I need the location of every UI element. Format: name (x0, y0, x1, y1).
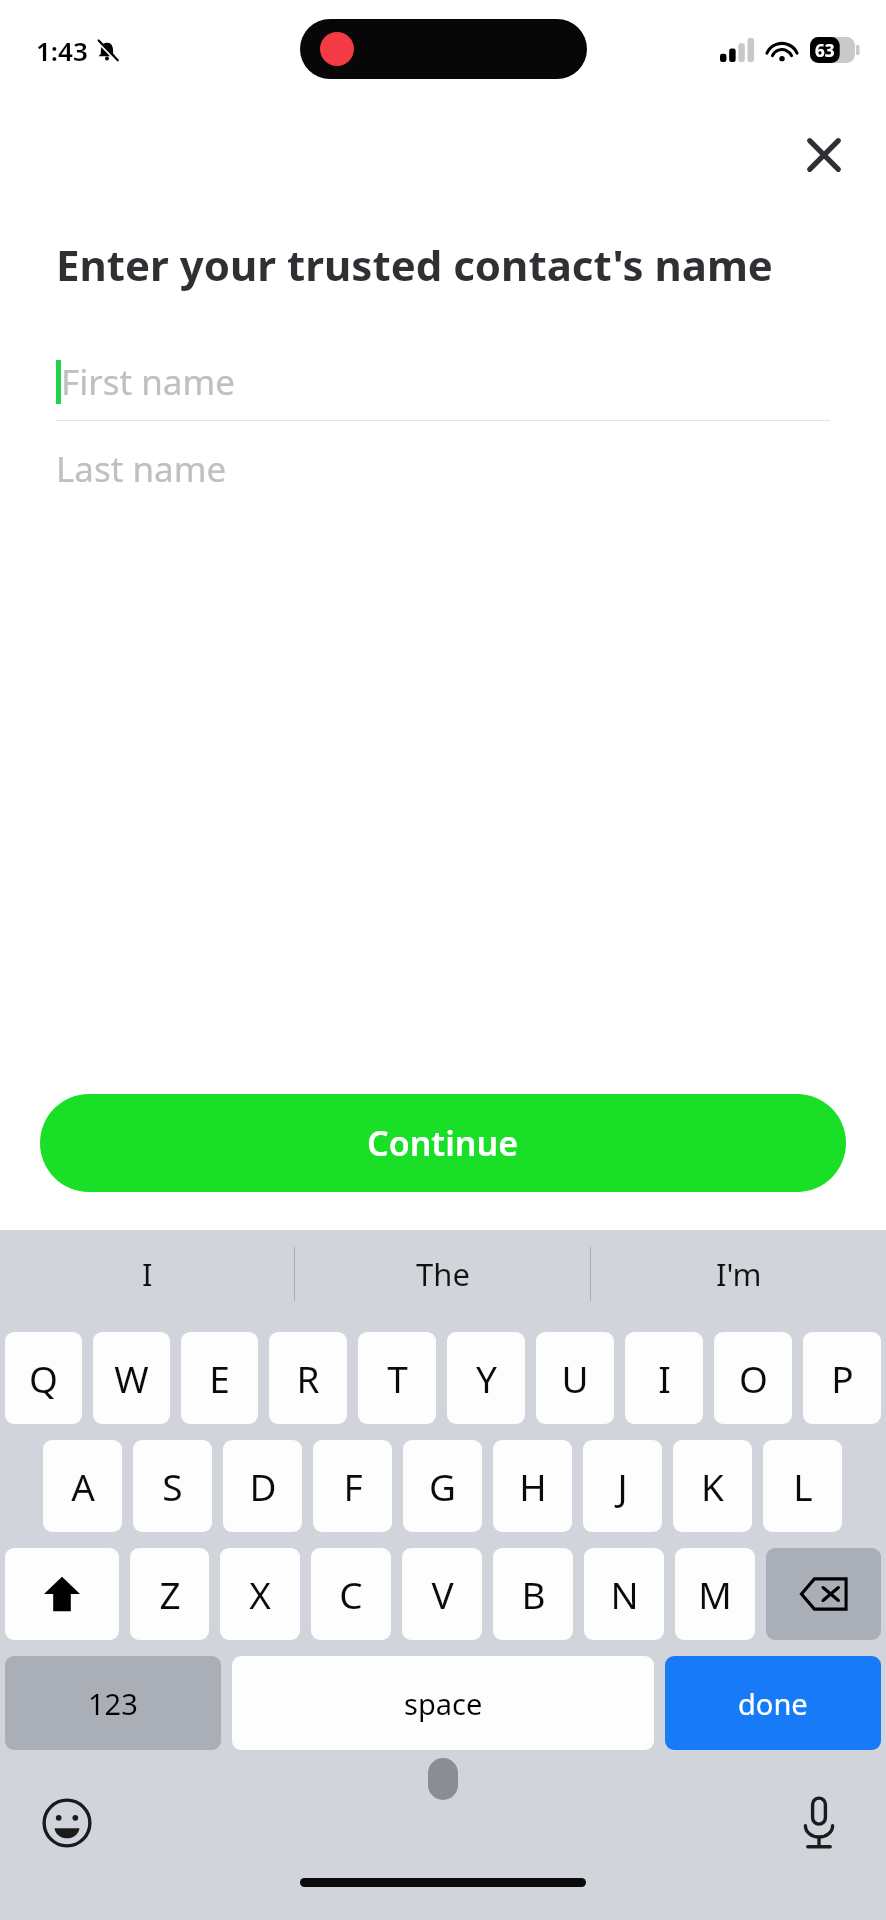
staticText: G (429, 1461, 456, 1511)
button[interactable]: space (232, 1656, 654, 1750)
button[interactable]: K (673, 1440, 752, 1532)
staticText: O (739, 1353, 768, 1403)
button[interactable]: Close (794, 125, 854, 185)
staticText: Z (159, 1569, 181, 1619)
button[interactable]: N (584, 1548, 664, 1640)
button[interactable]: L (763, 1440, 842, 1532)
staticText: H (519, 1461, 547, 1511)
staticText: D (249, 1461, 277, 1511)
staticText: The (416, 1253, 470, 1295)
button[interactable]: O (714, 1332, 792, 1424)
staticText: F (343, 1461, 363, 1511)
button[interactable]: The (295, 1230, 590, 1318)
staticText: U (561, 1353, 589, 1403)
button[interactable]: I'm (591, 1230, 886, 1318)
button[interactable]: 123 (5, 1656, 221, 1750)
staticText: A (71, 1461, 95, 1511)
staticText: 1:43 (36, 33, 88, 68)
button[interactable]: Y (447, 1332, 525, 1424)
staticText: Last name (56, 445, 227, 493)
staticText: Enter your trusted contact's name (56, 236, 773, 293)
staticText: 63 (815, 39, 835, 62)
button[interactable]: Continue (40, 1094, 846, 1192)
staticText: I'm (716, 1253, 762, 1295)
staticText: B (521, 1569, 546, 1619)
button[interactable]: Z (130, 1548, 209, 1640)
button[interactable]: C (311, 1548, 391, 1640)
button[interactable]: J (583, 1440, 662, 1532)
staticText: X (249, 1569, 271, 1619)
staticText: S (162, 1461, 183, 1511)
staticText: Continue (367, 1120, 519, 1166)
button[interactable]: G (403, 1440, 482, 1532)
button[interactable]: B (493, 1548, 573, 1640)
button[interactable]: Last name (56, 421, 830, 517)
button[interactable]: Shift (5, 1548, 119, 1640)
button[interactable]: First name (56, 343, 830, 420)
button[interactable]: E (181, 1332, 258, 1424)
button[interactable]: X (220, 1548, 300, 1640)
staticText: 123 (88, 1684, 138, 1723)
button[interactable]: done (665, 1656, 881, 1750)
staticText: C (339, 1569, 363, 1619)
staticText: P (831, 1353, 854, 1403)
button[interactable]: W (93, 1332, 170, 1424)
staticText: Y (476, 1353, 497, 1403)
button[interactable]: I (0, 1230, 294, 1318)
button[interactable]: U (536, 1332, 614, 1424)
button[interactable]: M (675, 1548, 755, 1640)
staticText: M (698, 1569, 732, 1619)
staticText: I (658, 1353, 671, 1403)
button[interactable]: F (313, 1440, 392, 1532)
staticText: W (114, 1353, 149, 1403)
staticText: Q (29, 1353, 58, 1403)
staticText: V (431, 1569, 454, 1619)
button[interactable]: I (625, 1332, 703, 1424)
button[interactable]: P (803, 1332, 881, 1424)
staticText: done (738, 1684, 808, 1723)
staticText: R (296, 1353, 320, 1403)
button[interactable]: R (269, 1332, 347, 1424)
staticText: J (617, 1461, 628, 1511)
staticText: N (610, 1569, 639, 1619)
button[interactable]: H (493, 1440, 572, 1532)
staticText: T (387, 1353, 408, 1403)
button[interactable]: Backspace (766, 1548, 881, 1640)
staticText: space (404, 1684, 483, 1723)
button[interactable]: T (358, 1332, 436, 1424)
button[interactable]: D (223, 1440, 302, 1532)
button[interactable]: Q (5, 1332, 82, 1424)
button[interactable]: Emoji (34, 1790, 100, 1856)
staticText: L (793, 1461, 813, 1511)
staticText: E (209, 1353, 230, 1403)
button[interactable]: V (402, 1548, 482, 1640)
button[interactable]: S (133, 1440, 212, 1532)
staticText: First name (61, 358, 235, 406)
staticText: K (701, 1461, 724, 1511)
staticText: I (142, 1253, 153, 1295)
button[interactable]: A (43, 1440, 122, 1532)
button[interactable]: Dictation (786, 1790, 852, 1856)
